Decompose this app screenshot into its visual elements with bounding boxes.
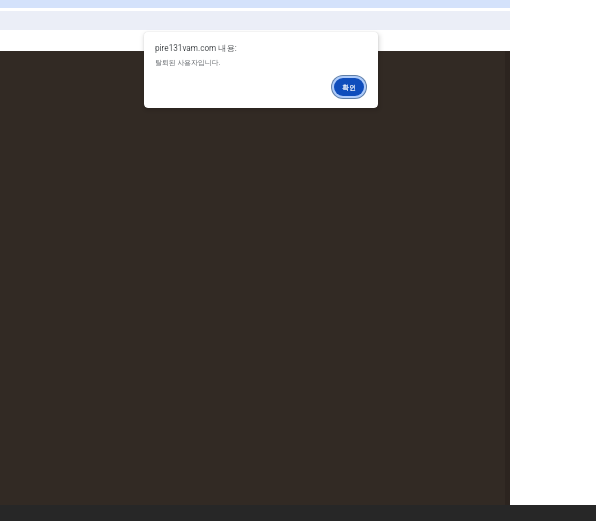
staticText: pire131vam.com 내용: bbox=[155, 43, 237, 53]
button[interactable]: 확인 bbox=[331, 75, 367, 99]
staticText: 확인 bbox=[342, 83, 356, 92]
staticText: 탈퇴된 사용자입니다. bbox=[155, 58, 221, 67]
